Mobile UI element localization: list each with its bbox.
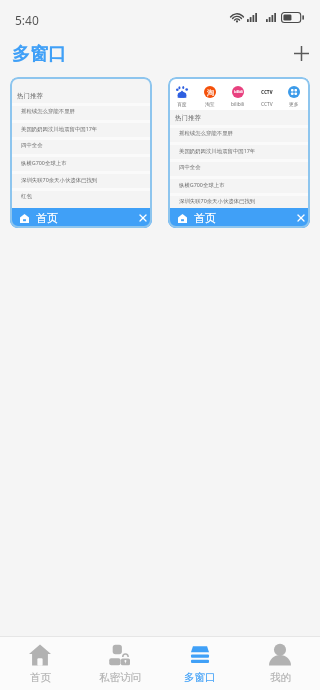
staticText: 纵横G700全球上市 <box>21 159 67 166</box>
staticText: 深圳失联70余天小伙遗体已找到 <box>21 176 98 183</box>
button[interactable]: Close window <box>294 211 308 225</box>
button[interactable]: Close window <box>136 211 150 225</box>
staticText: 深圳失联70余天小伙遗体已找到 <box>179 197 256 204</box>
button[interactable]: 百度 <box>168 77 310 228</box>
staticText: 摇粒绒怎么穿能不显胖 <box>21 108 75 115</box>
staticText: 四中全会 <box>21 142 43 149</box>
staticText: 美国奶奶因汶川地震留中国17年 <box>179 147 256 154</box>
staticText: 首页 <box>194 211 216 225</box>
staticText: CCTV <box>261 101 273 108</box>
staticText: 更多 <box>289 101 299 107</box>
staticText: 摇粒绒怎么穿能不显胖 <box>179 130 233 137</box>
button[interactable]: 我的 <box>240 637 320 690</box>
staticText: 红包 <box>21 193 32 200</box>
button[interactable]: 多窗口 <box>160 637 240 690</box>
staticText: 首页 <box>30 671 51 684</box>
button[interactable]: 私密访问 <box>80 637 160 690</box>
button[interactable]: 热门推荐 <box>10 77 152 228</box>
staticText: 私密访问 <box>99 671 141 684</box>
staticText: CCTV <box>261 89 273 95</box>
button[interactable]: CCTV <box>261 86 273 108</box>
staticText: 热门推荐 <box>175 114 201 122</box>
staticText: bilibili <box>231 101 245 108</box>
button[interactable]: 百度 <box>176 86 188 107</box>
staticText: 多窗口 <box>12 43 66 66</box>
staticText: 5:40 <box>15 12 39 28</box>
staticText: 首页 <box>36 211 58 225</box>
staticText: 热门推荐 <box>17 92 43 100</box>
staticText: 多窗口 <box>184 671 216 684</box>
staticText: 纵横G700全球上市 <box>179 181 225 188</box>
staticText: 四中全会 <box>179 164 201 171</box>
staticText: 百度 <box>177 101 187 107</box>
staticText: 美国奶奶因汶川地震留中国17年 <box>21 125 98 132</box>
button[interactable]: bilibili <box>231 86 245 108</box>
staticText: 我的 <box>270 671 291 684</box>
staticText: bilibili <box>234 90 243 94</box>
button[interactable]: 首页 <box>0 637 80 690</box>
button[interactable]: Add new window <box>284 36 318 70</box>
staticText: 淘宝 <box>205 101 215 107</box>
button[interactable]: 更多 <box>288 86 300 107</box>
staticText: 淘 <box>207 88 214 97</box>
button[interactable]: 淘 <box>204 86 216 107</box>
